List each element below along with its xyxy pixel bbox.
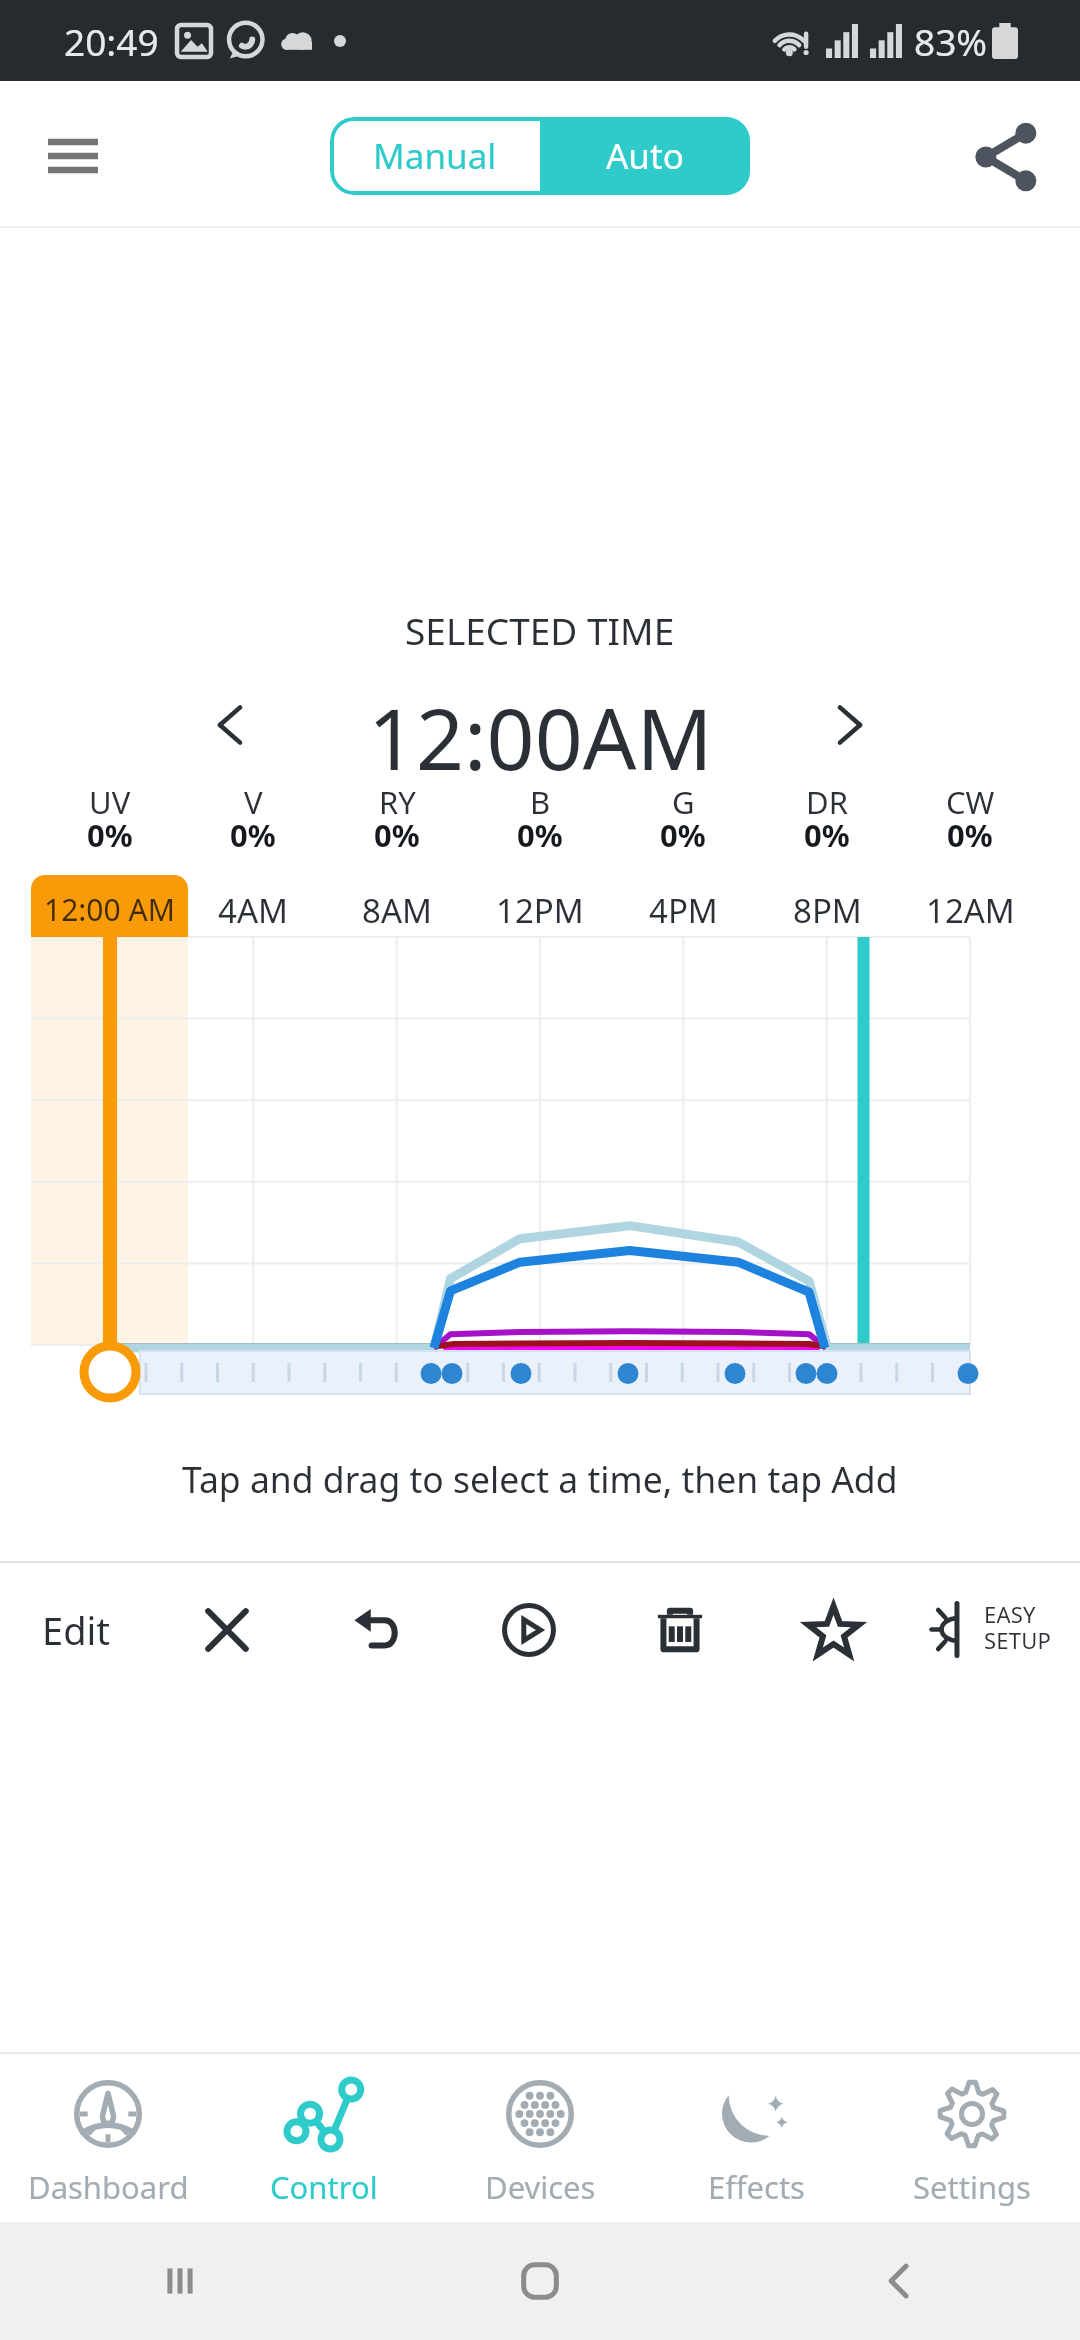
button[interactable]: Previous time xyxy=(190,685,270,765)
button[interactable]: Cancel xyxy=(152,1557,302,1703)
staticText: 83% xyxy=(914,16,988,66)
button[interactable]: Menu xyxy=(32,115,114,197)
button[interactable]: Settings xyxy=(864,2054,1080,2222)
button[interactable]: Dashboard xyxy=(0,2054,216,2222)
staticText: 0% xyxy=(374,814,420,856)
staticText: DR xyxy=(806,781,848,823)
staticText: 0% xyxy=(660,814,706,856)
button[interactable]: Home xyxy=(360,2222,720,2340)
staticText: 0% xyxy=(517,814,563,856)
staticText: G xyxy=(672,781,695,823)
staticText: EASY xyxy=(984,1599,1036,1629)
staticText: RY xyxy=(379,781,416,823)
staticText: 8PM xyxy=(793,888,862,933)
staticText: 4PM xyxy=(649,888,718,933)
button[interactable]: Back xyxy=(720,2222,1080,2340)
staticText: Control xyxy=(270,2166,378,2208)
button[interactable]: Share xyxy=(960,111,1052,203)
staticText: SELECTED TIME xyxy=(405,605,675,655)
staticText: 4AM xyxy=(218,888,288,933)
staticText: 0% xyxy=(804,814,850,856)
staticText: B xyxy=(530,781,551,823)
staticText: 12AM xyxy=(926,888,1015,933)
button[interactable]: Next time xyxy=(810,685,890,765)
staticText: Dashboard xyxy=(28,2166,189,2208)
staticText: V xyxy=(244,781,263,823)
button[interactable]: Devices xyxy=(432,2054,648,2222)
staticText: 12:00AM xyxy=(368,680,713,794)
staticText: 12PM xyxy=(496,888,584,933)
staticText: SETUP xyxy=(984,1625,1051,1655)
staticText: 20:49 xyxy=(64,16,159,66)
staticText: Effects xyxy=(708,2166,805,2208)
staticText: Tap and drag to select a time, then tap … xyxy=(182,1455,898,1503)
staticText: Auto xyxy=(606,132,684,180)
button[interactable]: Favourite xyxy=(758,1557,908,1703)
button[interactable]: Control xyxy=(216,2054,432,2222)
button[interactable]: EASY xyxy=(912,1557,1080,1703)
button[interactable]: Play xyxy=(454,1557,604,1703)
staticText: CW xyxy=(946,781,995,823)
staticText: UV xyxy=(89,781,131,823)
staticText: 0% xyxy=(230,814,276,856)
staticText: Edit xyxy=(42,1604,111,1656)
button[interactable]: Edit xyxy=(0,1557,152,1703)
staticText: 0% xyxy=(947,814,993,856)
staticText: 0% xyxy=(87,814,133,856)
staticText: 12:00 AM xyxy=(44,889,175,930)
staticText: Manual xyxy=(373,132,497,180)
button[interactable]: Recent apps xyxy=(0,2222,360,2340)
button[interactable]: 12:00 AM xyxy=(31,875,188,937)
staticText: Settings xyxy=(913,2166,1031,2208)
button[interactable]: Delete xyxy=(605,1557,755,1703)
button[interactable]: Manual xyxy=(330,117,540,195)
button[interactable]: Undo xyxy=(301,1557,451,1703)
button[interactable]: Effects xyxy=(648,2054,864,2222)
staticText: Devices xyxy=(485,2166,596,2208)
staticText: 8AM xyxy=(362,888,432,933)
button[interactable]: Auto xyxy=(540,117,750,195)
